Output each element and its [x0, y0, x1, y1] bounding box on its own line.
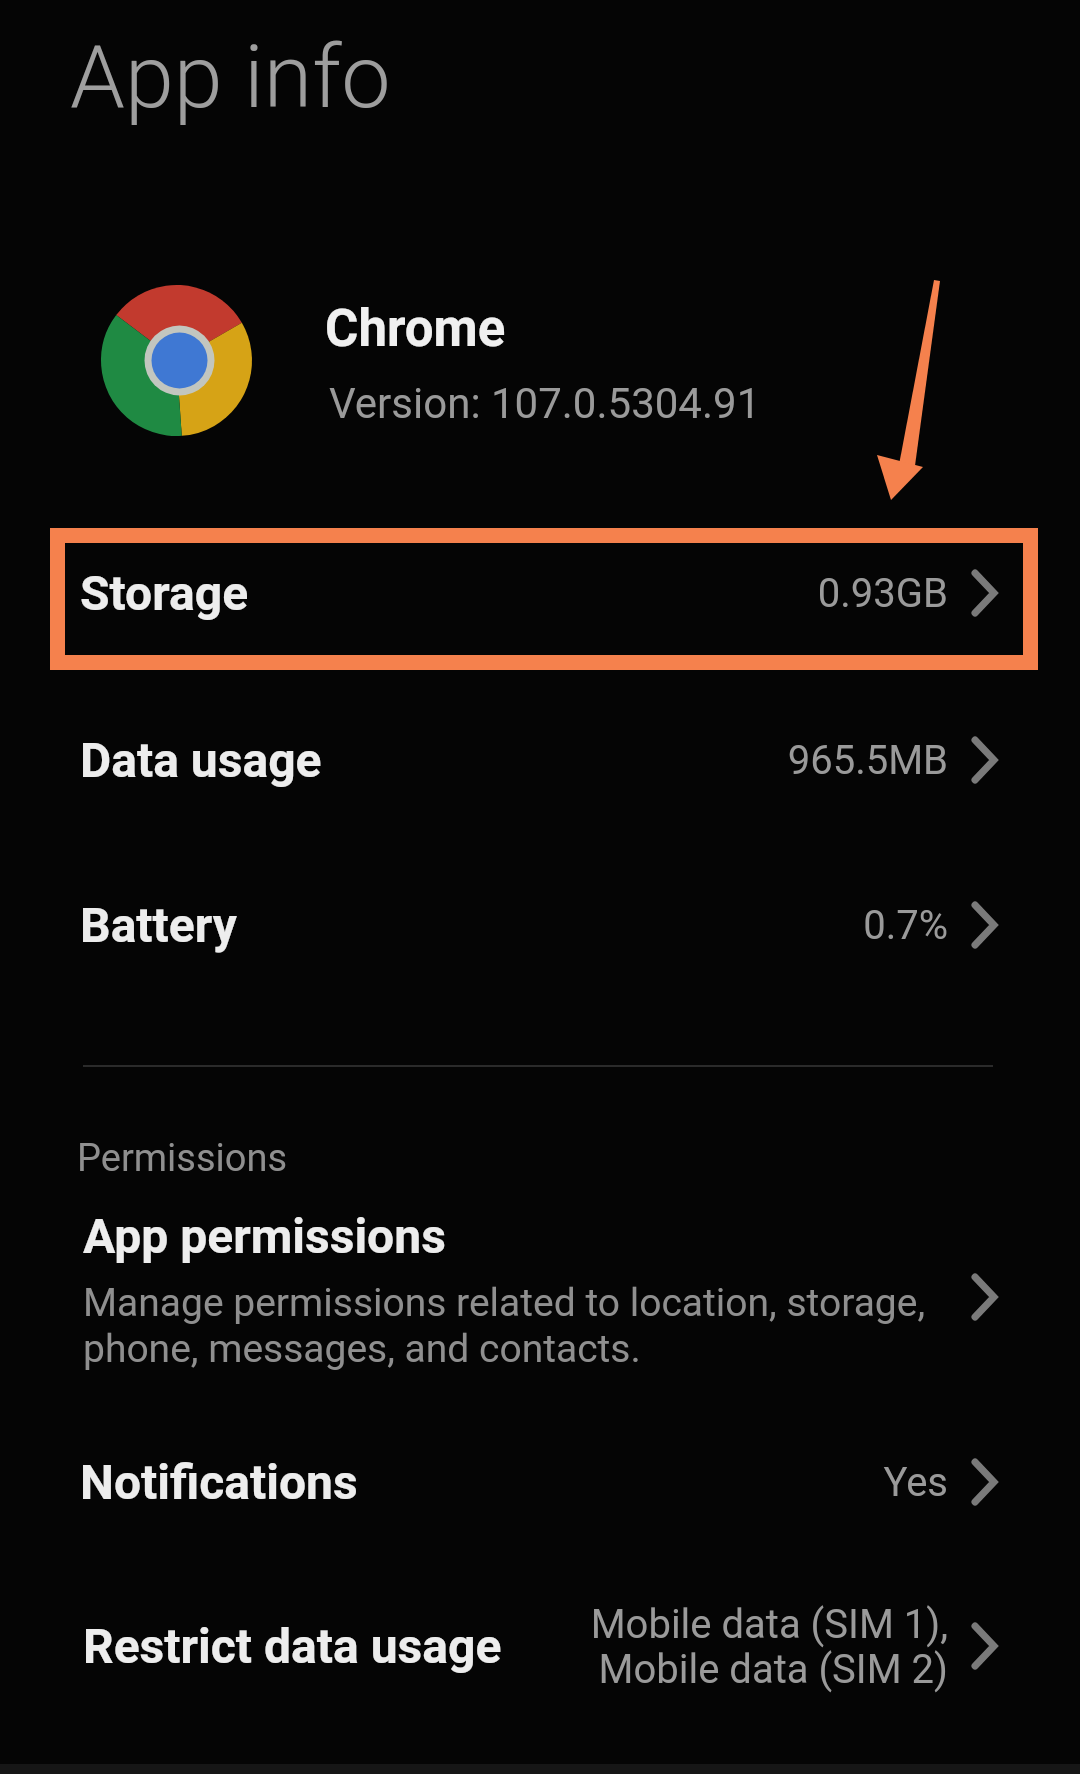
staticText: Permissions [77, 1136, 288, 1181]
staticText: Yes [883, 1459, 948, 1506]
button[interactable]: Battery [40, 860, 1040, 990]
staticText: Restrict data usage [83, 1618, 502, 1674]
staticText: Mobile data (SIM 1), Mobile data (SIM 2) [590, 1601, 948, 1692]
staticText: Notifications [80, 1454, 358, 1510]
staticText: 0.93GB [817, 570, 948, 617]
button[interactable]: Notifications [40, 1417, 1040, 1547]
staticText: App permissions [83, 1208, 446, 1264]
staticText: Battery [80, 897, 237, 953]
staticText: Version: 107.0.5304.91 [329, 379, 761, 428]
staticText: App info [70, 25, 391, 128]
staticText: Manage permissions related to location, … [83, 1280, 926, 1372]
staticText: Chrome [325, 299, 506, 359]
button[interactable]: App permissions [40, 1190, 1040, 1400]
staticText: 965.5MB [787, 737, 948, 784]
button[interactable]: Storage [40, 528, 1040, 658]
staticText: Data usage [80, 732, 322, 788]
staticText: 0.7% [863, 902, 948, 949]
button[interactable]: Restrict data usage [40, 1581, 1040, 1711]
staticText: Storage [80, 565, 249, 621]
button[interactable]: Data usage [40, 695, 1040, 825]
